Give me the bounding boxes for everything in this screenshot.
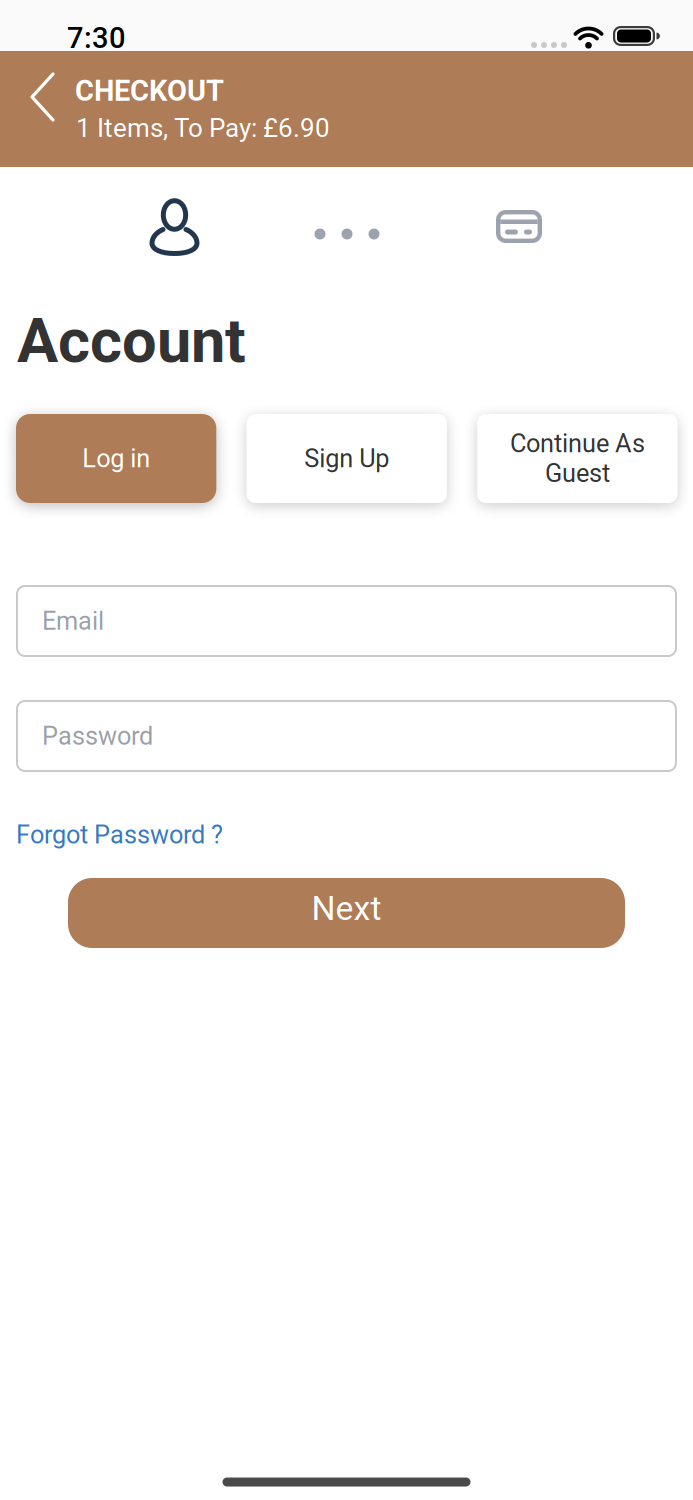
staticText: Forgot Password ? — [16, 820, 223, 850]
button[interactable]: Next — [68, 878, 625, 948]
button[interactable]: Continue As Guest — [477, 414, 677, 503]
staticText: Email — [42, 606, 104, 636]
staticText: Next — [311, 889, 381, 928]
button[interactable]: Password — [16, 700, 677, 772]
staticText: Password — [42, 721, 153, 751]
button[interactable]: Sign Up — [247, 414, 447, 503]
staticText: 7:30 — [67, 21, 126, 55]
staticText: Continue As Guest — [510, 429, 645, 488]
staticText: CHECKOUT — [75, 74, 224, 108]
staticText: Account — [17, 305, 246, 377]
button[interactable]: Log in — [16, 414, 216, 503]
staticText: Sign Up — [304, 444, 389, 473]
staticText: 1 Items, To Pay: £6.90 — [76, 113, 330, 143]
button[interactable]: Forgot Password ? — [16, 820, 223, 850]
staticText: Log in — [82, 444, 150, 473]
button[interactable]: Email — [16, 585, 677, 657]
button[interactable]: Back — [30, 72, 56, 122]
